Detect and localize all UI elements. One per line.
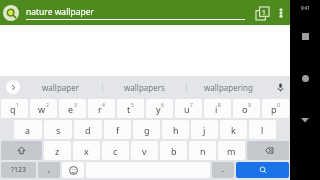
staticText: 9:41 bbox=[301, 5, 310, 11]
staticText: , bbox=[48, 163, 51, 174]
staticText: o bbox=[242, 103, 248, 115]
button[interactable]: d bbox=[74, 120, 102, 139]
button[interactable]: Shift bbox=[1, 141, 42, 160]
button[interactable]: p bbox=[262, 99, 289, 118]
staticText: d bbox=[85, 124, 91, 136]
button[interactable]: k bbox=[220, 120, 247, 139]
staticText: f bbox=[116, 124, 120, 136]
staticText: x bbox=[84, 145, 89, 157]
staticText: g bbox=[144, 124, 150, 136]
button[interactable]: a bbox=[14, 120, 42, 139]
staticText: y bbox=[156, 103, 161, 115]
staticText: z bbox=[55, 145, 60, 157]
button[interactable]: Search bbox=[3, 5, 19, 21]
staticText: k bbox=[231, 124, 236, 136]
staticText: l bbox=[261, 124, 264, 136]
staticText: u bbox=[184, 103, 190, 115]
button[interactable]: Voice input bbox=[270, 76, 290, 98]
button[interactable]: wallpapering bbox=[187, 76, 270, 98]
staticText: wallpapers bbox=[124, 82, 165, 93]
staticText: m bbox=[227, 145, 236, 157]
button[interactable]: m bbox=[218, 141, 245, 160]
button[interactable]: v bbox=[131, 141, 158, 160]
staticText: 4 bbox=[102, 102, 105, 109]
button[interactable]: q bbox=[1, 99, 28, 118]
staticText: 9 bbox=[248, 102, 251, 109]
staticText: ?123 bbox=[11, 165, 27, 175]
staticText: 2 bbox=[46, 102, 49, 109]
button[interactable]: e bbox=[59, 99, 86, 118]
staticText: t bbox=[127, 103, 131, 115]
button[interactable]: Search bbox=[236, 162, 289, 178]
staticText: . bbox=[222, 163, 225, 174]
staticText: wallpaper bbox=[42, 82, 80, 93]
button[interactable]: y bbox=[146, 99, 173, 118]
button[interactable]: More suggestions bbox=[6, 80, 20, 94]
staticText: v bbox=[142, 145, 147, 157]
staticText: 1 bbox=[262, 8, 266, 17]
button[interactable]: t bbox=[117, 99, 144, 118]
button[interactable]: ?123 bbox=[1, 162, 36, 178]
button[interactable]: r bbox=[88, 99, 115, 118]
button[interactable]: b bbox=[160, 141, 187, 160]
staticText: a bbox=[25, 124, 31, 136]
staticText: 3 bbox=[74, 102, 77, 109]
button[interactable]: More options bbox=[274, 6, 288, 20]
button[interactable]: n bbox=[189, 141, 216, 160]
staticText: b bbox=[171, 145, 177, 157]
button[interactable]: wallpaper bbox=[20, 76, 102, 98]
button[interactable]: nature wallpaper bbox=[26, 6, 245, 20]
staticText: s bbox=[56, 124, 61, 136]
button[interactable]: l bbox=[249, 120, 276, 139]
button[interactable]: f bbox=[104, 120, 131, 139]
button[interactable]: wallpapers bbox=[103, 76, 186, 98]
button[interactable]: x bbox=[73, 141, 100, 160]
staticText: 7 bbox=[190, 102, 193, 109]
staticText: w bbox=[38, 103, 46, 115]
button[interactable]: Home bbox=[297, 70, 313, 86]
button[interactable]: Backspace bbox=[247, 141, 289, 160]
button[interactable]: s bbox=[44, 120, 72, 139]
button[interactable]: c bbox=[102, 141, 129, 160]
staticText: p bbox=[271, 103, 277, 115]
button[interactable]: h bbox=[162, 120, 189, 139]
button[interactable]: Emoji bbox=[62, 162, 84, 178]
staticText: i bbox=[215, 103, 218, 115]
staticText: 1 bbox=[16, 102, 19, 109]
button[interactable]: z bbox=[44, 141, 71, 160]
staticText: n bbox=[200, 145, 206, 157]
staticText: 0 bbox=[277, 102, 280, 109]
staticText: wallpapering bbox=[204, 82, 253, 93]
button[interactable]: Recent apps bbox=[297, 28, 313, 44]
button[interactable]: w bbox=[30, 99, 57, 118]
button[interactable]: Comma bbox=[38, 162, 60, 178]
button[interactable]: u bbox=[175, 99, 202, 118]
staticText: c bbox=[113, 145, 118, 157]
staticText: r bbox=[98, 103, 102, 115]
button[interactable]: Period bbox=[212, 162, 234, 178]
button[interactable]: j bbox=[191, 120, 218, 139]
button[interactable]: i bbox=[204, 99, 231, 118]
button[interactable]: g bbox=[133, 120, 160, 139]
staticText: nature wallpaper bbox=[26, 6, 95, 18]
button[interactable]: Back bbox=[297, 112, 313, 128]
staticText: j bbox=[203, 124, 206, 136]
staticText: e bbox=[68, 103, 74, 115]
staticText: 8 bbox=[218, 102, 221, 109]
button[interactable]: o bbox=[233, 99, 260, 118]
button[interactable]: Tabs, 1 open bbox=[253, 4, 271, 22]
staticText: h bbox=[173, 124, 179, 136]
staticText: 6 bbox=[161, 102, 164, 109]
staticText: 5 bbox=[131, 102, 134, 109]
staticText: q bbox=[10, 103, 16, 115]
